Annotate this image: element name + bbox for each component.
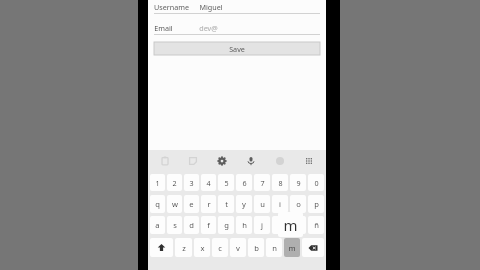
staticText: a: [155, 220, 160, 230]
staticText: z: [182, 243, 186, 253]
button[interactable]: d: [184, 216, 199, 234]
staticText: Username: [154, 2, 189, 12]
button[interactable]: Username: [154, 1, 320, 14]
staticText: v: [236, 243, 240, 253]
staticText: r: [207, 199, 211, 209]
staticText: Save: [229, 44, 245, 54]
button[interactable]: 4: [201, 174, 216, 191]
staticText: f: [207, 220, 210, 230]
staticText: 2: [172, 178, 177, 188]
button[interactable]: b: [248, 238, 264, 257]
button[interactable]: m: [284, 238, 300, 257]
staticText: p: [314, 199, 319, 209]
button[interactable]: 7: [254, 174, 270, 191]
button[interactable]: v: [230, 238, 246, 257]
button[interactable]: More options: [294, 150, 323, 172]
button[interactable]: y: [236, 195, 252, 213]
button[interactable]: j: [254, 216, 270, 234]
button[interactable]: g: [218, 216, 234, 234]
button[interactable]: Voice input: [236, 150, 265, 172]
button[interactable]: Clipboard: [151, 150, 179, 172]
button[interactable]: Theme: [265, 150, 294, 172]
staticText: o: [296, 199, 301, 209]
staticText: dev@: [199, 23, 218, 33]
button[interactable]: p: [308, 195, 324, 213]
button[interactable]: w: [167, 195, 182, 213]
button[interactable]: e: [184, 195, 199, 213]
staticText: 4: [206, 178, 211, 188]
staticText: Email: [154, 23, 173, 33]
button[interactable]: x: [194, 238, 210, 257]
staticText: ñ: [314, 220, 319, 230]
staticText: g: [224, 220, 229, 230]
staticText: c: [218, 243, 222, 253]
button[interactable]: 1: [150, 174, 165, 191]
button[interactable]: c: [212, 238, 228, 257]
staticText: 9: [296, 178, 301, 188]
button[interactable]: 2: [167, 174, 182, 191]
staticText: t: [225, 199, 228, 209]
staticText: 3: [189, 178, 194, 188]
button[interactable]: Shift: [150, 238, 173, 257]
button[interactable]: q: [150, 195, 165, 213]
button[interactable]: h: [236, 216, 252, 234]
button[interactable]: t: [218, 195, 234, 213]
staticText: n: [272, 243, 277, 253]
button[interactable]: u: [254, 195, 270, 213]
button[interactable]: f: [201, 216, 216, 234]
button[interactable]: n: [266, 238, 282, 257]
staticText: 1: [155, 178, 160, 188]
staticText: 6: [242, 178, 247, 188]
button[interactable]: Settings: [207, 150, 236, 172]
button[interactable]: ñ: [308, 216, 324, 234]
button[interactable]: [290, 216, 306, 234]
button[interactable]: Backspace: [302, 238, 324, 257]
button[interactable]: 3: [184, 174, 199, 191]
staticText: Miguel: [199, 2, 223, 12]
button[interactable]: 0: [308, 174, 324, 191]
staticText: m: [283, 215, 298, 235]
button[interactable]: Stickers: [179, 150, 207, 172]
staticText: 7: [260, 178, 265, 188]
button[interactable]: 9: [290, 174, 306, 191]
button[interactable]: s: [167, 216, 182, 234]
staticText: q: [155, 199, 160, 209]
staticText: j: [261, 220, 263, 230]
button[interactable]: 5: [218, 174, 234, 191]
staticText: i: [279, 199, 281, 209]
button[interactable]: Save: [154, 42, 320, 55]
staticText: 0: [314, 178, 319, 188]
button[interactable]: o: [290, 195, 306, 213]
staticText: 8: [278, 178, 283, 188]
button[interactable]: [272, 216, 288, 234]
button[interactable]: z: [175, 238, 192, 257]
button[interactable]: Email: [154, 22, 320, 35]
staticText: d: [189, 220, 194, 230]
button[interactable]: r: [201, 195, 216, 213]
button[interactable]: i: [272, 195, 288, 213]
button[interactable]: 8: [272, 174, 288, 191]
staticText: x: [200, 243, 205, 253]
staticText: 5: [224, 178, 229, 188]
staticText: h: [242, 220, 247, 230]
button[interactable]: 6: [236, 174, 252, 191]
staticText: y: [242, 199, 246, 209]
staticText: e: [189, 199, 194, 209]
staticText: s: [173, 220, 177, 230]
staticText: w: [172, 199, 178, 209]
staticText: m: [288, 243, 296, 253]
button[interactable]: a: [150, 216, 165, 234]
staticText: b: [254, 243, 259, 253]
staticText: u: [260, 199, 265, 209]
